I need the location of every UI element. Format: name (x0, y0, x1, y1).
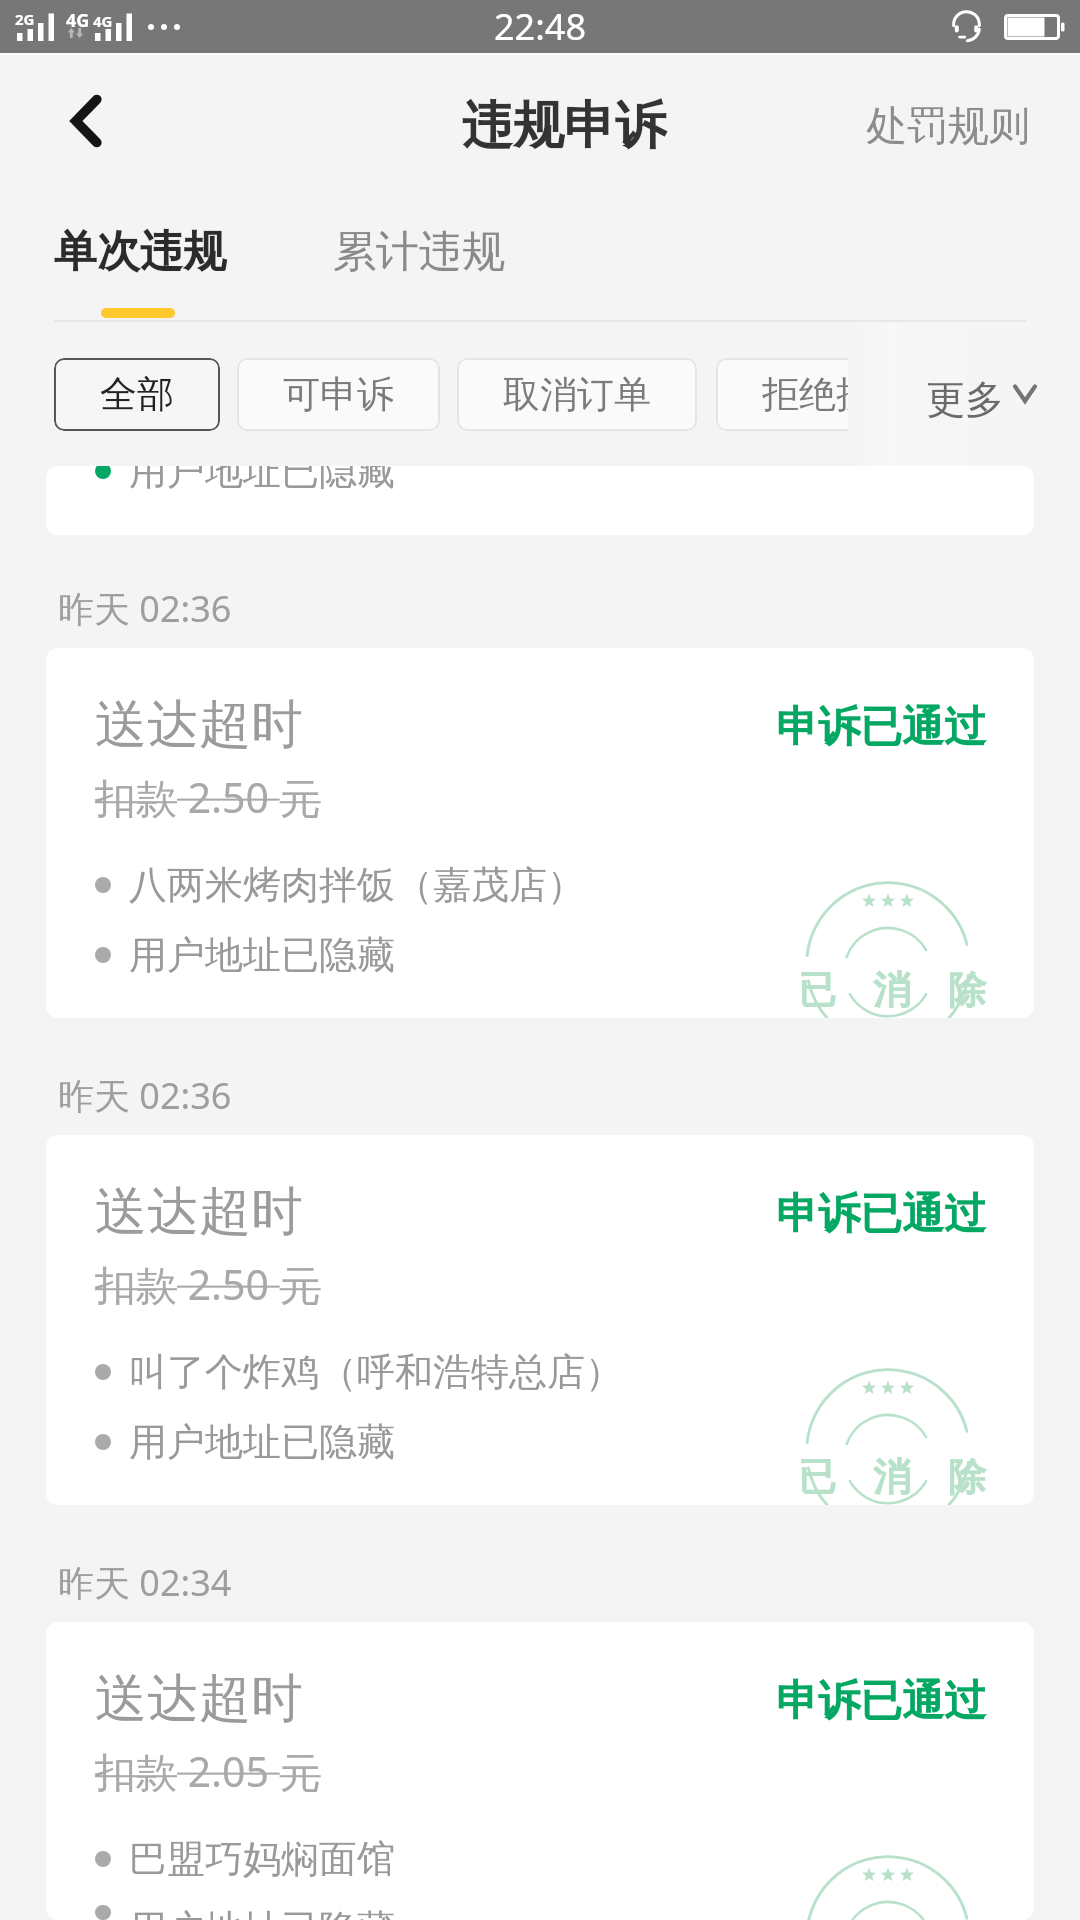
button[interactable]: 单次违规 (54, 225, 226, 279)
staticText: 用户地址已隐藏 (129, 466, 395, 495)
staticText: 送达超时 (95, 1666, 303, 1732)
staticText: 昨天 02:34 (58, 1558, 232, 1607)
button[interactable]: 取消订单 (457, 358, 697, 431)
staticText: 扣款 2.50 元 (95, 1256, 321, 1312)
staticText: 除 (948, 1453, 978, 1501)
staticText: 扣款 2.50 元 (95, 769, 321, 825)
staticText: 全部 (100, 371, 174, 418)
staticText: 消 (873, 1453, 911, 1501)
staticText: 累计违规 (333, 225, 505, 279)
staticText: 八两米烤肉拌饭（嘉茂店） (129, 861, 585, 909)
staticText: 巴盟巧妈焖面馆 (129, 1835, 395, 1883)
staticText: 4G (66, 8, 90, 33)
staticText: 申诉已通过 (776, 1675, 986, 1728)
staticText: 用户地址已隐藏 (129, 1905, 395, 1920)
staticText: 已 (798, 1453, 836, 1501)
staticText: 送达超时 (95, 1179, 303, 1245)
staticText: 用户地址已隐藏 (129, 1418, 395, 1466)
staticText: 违规申诉 (462, 94, 666, 158)
button[interactable]: 处罚规则 (846, 87, 1050, 167)
staticText: 昨天 02:36 (58, 584, 232, 633)
staticText: 4G (93, 11, 113, 31)
staticText: 叫了个炸鸡（呼和浩特总店） (129, 1348, 623, 1396)
button[interactable]: 已 (46, 1622, 1034, 1920)
button[interactable]: 全部 (54, 358, 220, 431)
staticText: 可申诉 (283, 371, 394, 418)
staticText: 除 (948, 966, 978, 1014)
staticText: 消 (873, 966, 911, 1014)
button[interactable]: 已 (46, 648, 1034, 1018)
staticText: 送达超时 (95, 692, 303, 758)
button[interactable]: 拒绝接单 (716, 358, 848, 431)
button[interactable]: 已 (46, 1135, 1034, 1505)
staticText: 昨天 02:36 (58, 1071, 232, 1120)
staticText: 单次违规 (54, 225, 226, 279)
staticText: 申诉已通过 (776, 1188, 986, 1241)
staticText: 22:48 (494, 2, 587, 51)
staticText: 扣款 2.05 元 (95, 1743, 321, 1799)
staticText: 用户地址已隐藏 (129, 931, 395, 979)
button[interactable]: Back (40, 82, 130, 172)
staticText: 更多 (926, 375, 1004, 424)
staticText: 已 (798, 966, 836, 1014)
staticText: 处罚规则 (866, 101, 1030, 153)
button[interactable]: 更多 (848, 322, 1080, 466)
button[interactable]: 累计违规 (333, 225, 505, 279)
staticText: 拒绝接单 (762, 371, 848, 418)
staticText: 申诉已通过 (776, 701, 986, 754)
button[interactable]: 可申诉 (237, 358, 440, 431)
staticText: 取消订单 (503, 371, 651, 418)
staticText: 2G (15, 9, 35, 29)
